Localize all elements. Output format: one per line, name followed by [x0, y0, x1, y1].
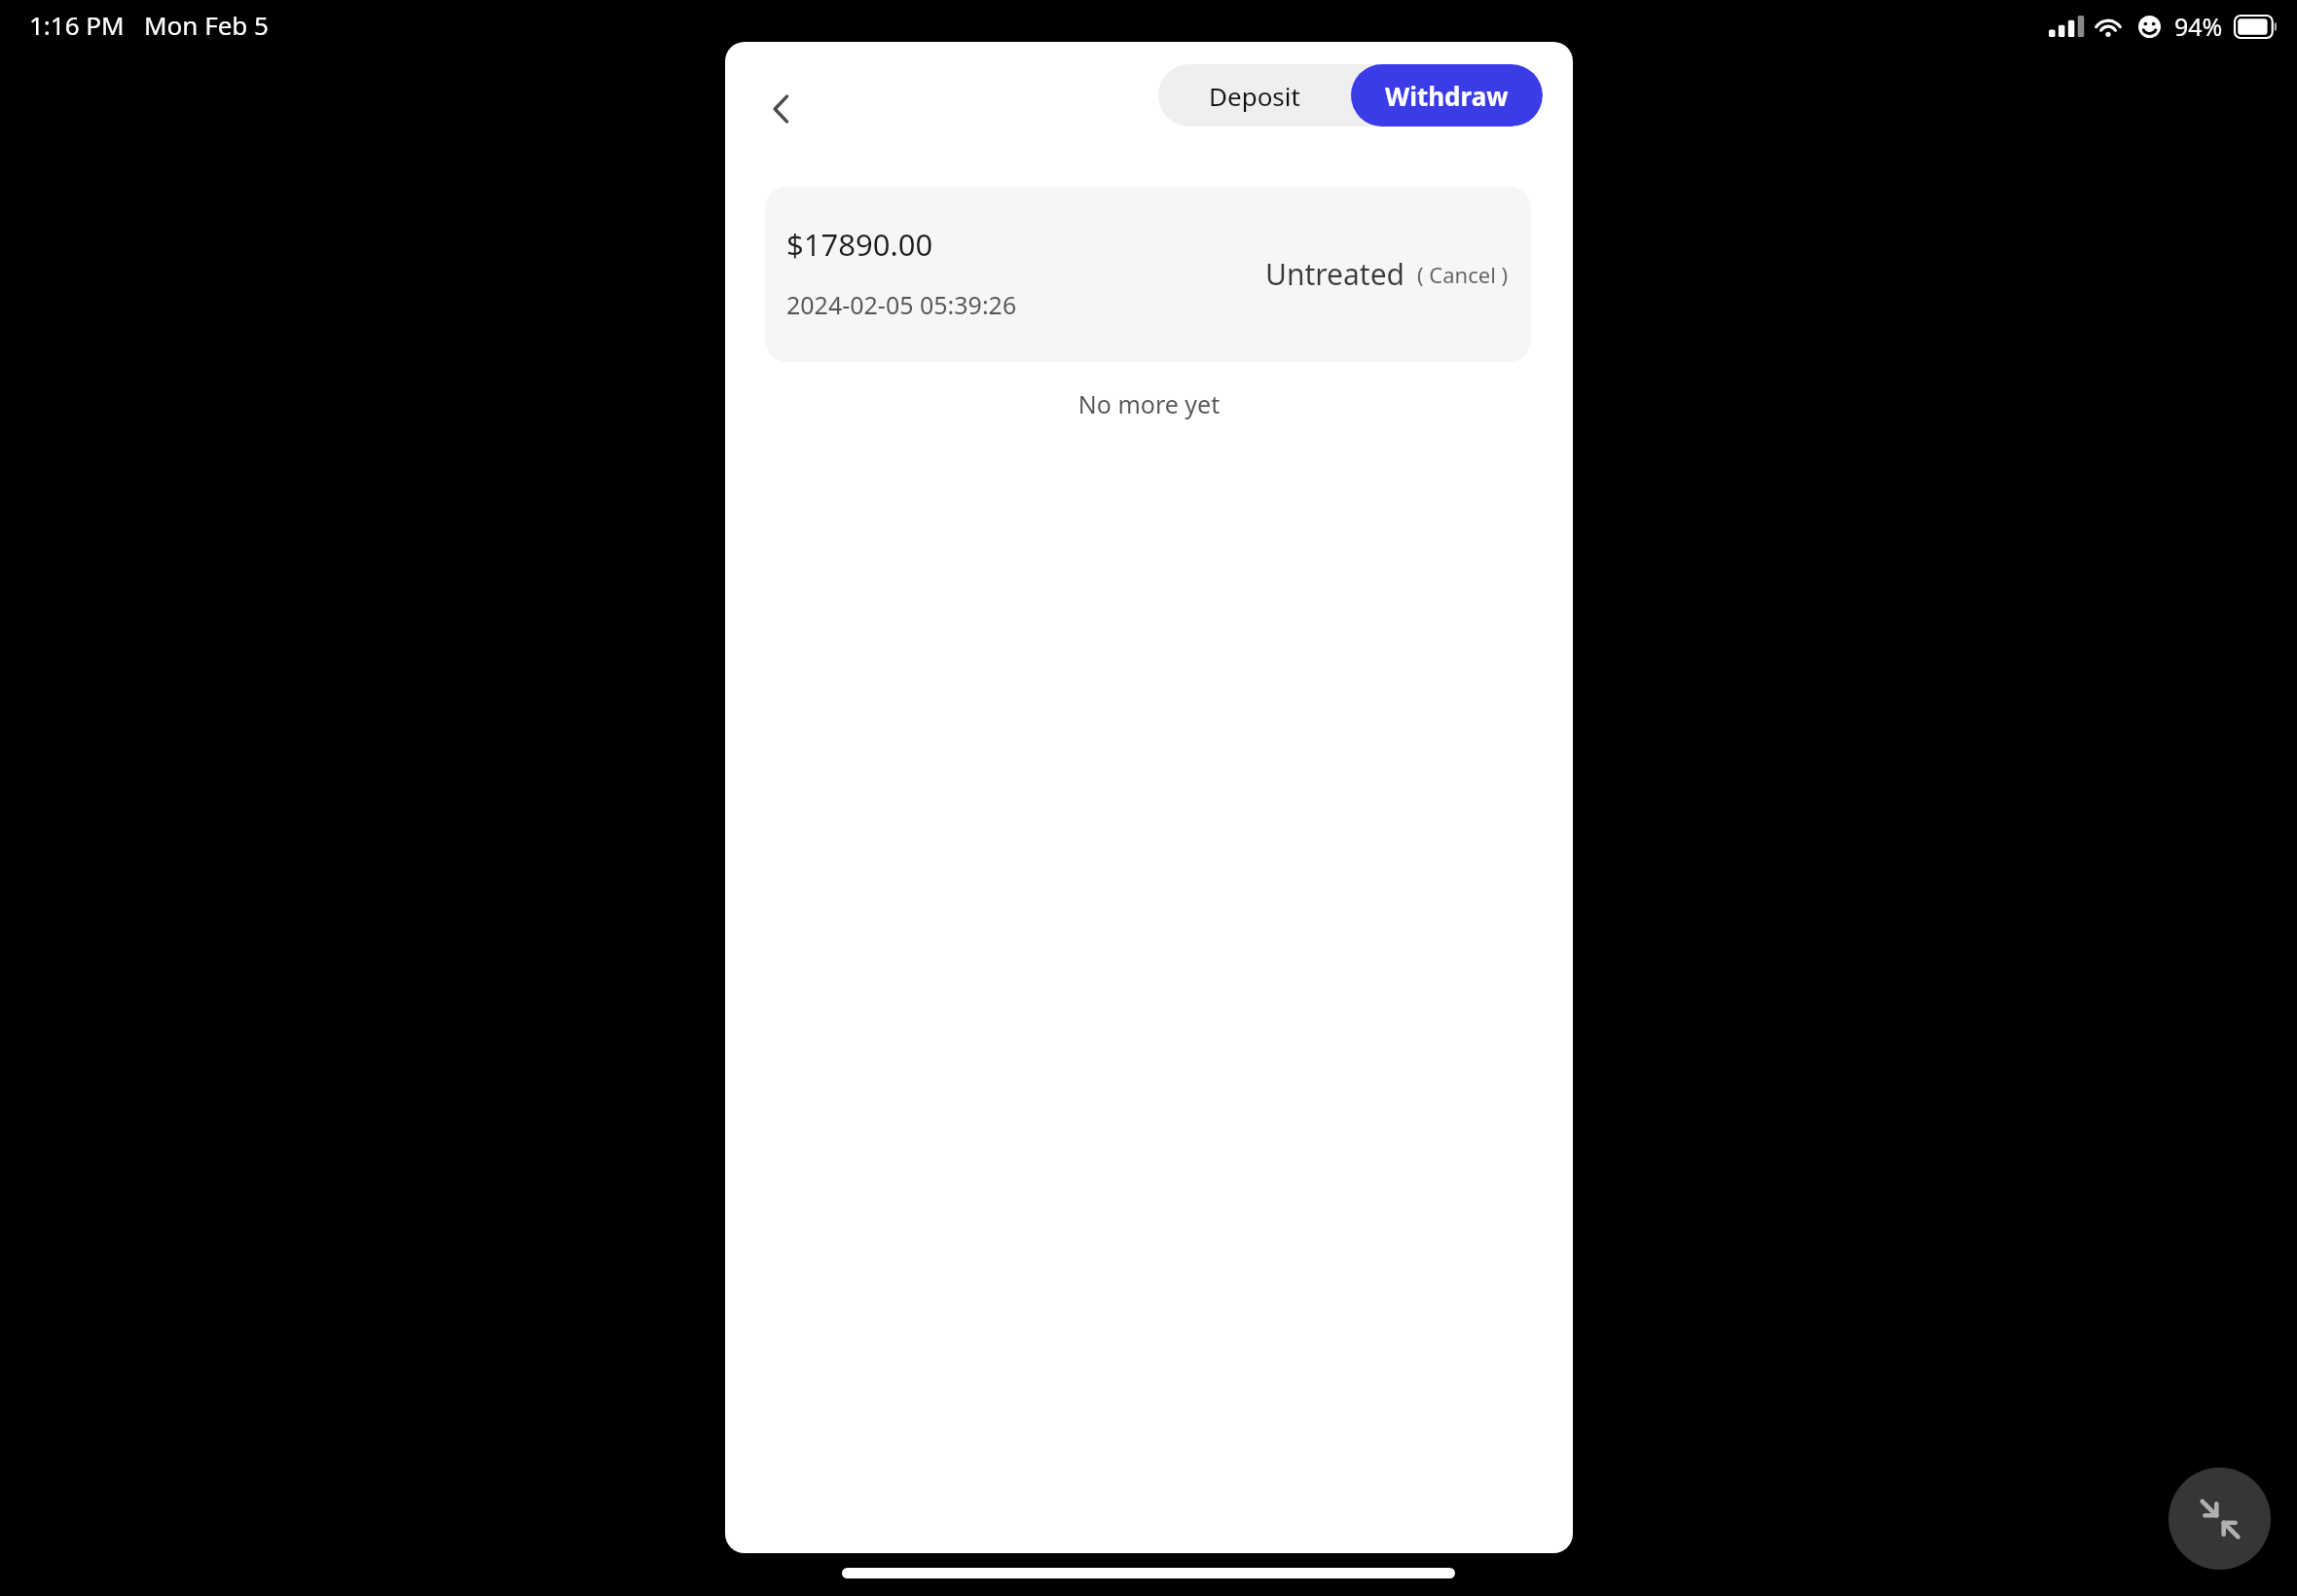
- button[interactable]: Back: [748, 76, 815, 142]
- staticText: No more yet: [725, 387, 1573, 420]
- staticText: ( Cancel ): [1417, 260, 1509, 289]
- staticText: Mon Feb 5: [144, 8, 269, 42]
- staticText: 2024-02-05 05:39:26: [786, 288, 1017, 321]
- staticText: 1:16 PM: [29, 8, 125, 42]
- staticText: 94%: [2174, 10, 2223, 43]
- staticText: $17890.00: [786, 224, 933, 265]
- staticText: Withdraw: [1385, 79, 1509, 113]
- button[interactable]: Withdraw: [1351, 64, 1543, 127]
- button[interactable]: Deposit: [1158, 64, 1351, 127]
- button[interactable]: $17890.00: [765, 187, 1531, 362]
- button[interactable]: Collapse: [2169, 1468, 2271, 1570]
- staticText: Untreated: [1265, 254, 1405, 294]
- button[interactable]: ( Cancel ): [1415, 258, 1511, 291]
- staticText: Deposit: [1209, 79, 1300, 113]
